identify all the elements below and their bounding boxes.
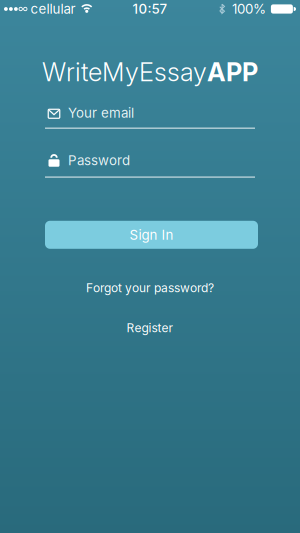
staticText: Forgot your password?	[86, 281, 214, 295]
staticText: cellular	[30, 1, 75, 17]
staticText: WriteMyEssayAPP	[42, 57, 258, 87]
button[interactable]: Sign In	[45, 221, 258, 249]
staticText: Password	[68, 152, 130, 168]
staticText: Register	[126, 321, 173, 335]
button[interactable]: Forgot your password?	[86, 280, 214, 296]
staticText: 100%	[232, 1, 266, 17]
secureTextField[interactable]: Password	[0, 150, 300, 178]
textField[interactable]: Your email	[0, 103, 300, 129]
button[interactable]: Register	[126, 320, 173, 336]
staticText: Sign In	[129, 227, 173, 243]
staticText: 10:57	[132, 1, 167, 17]
staticText: Your email	[68, 105, 134, 121]
